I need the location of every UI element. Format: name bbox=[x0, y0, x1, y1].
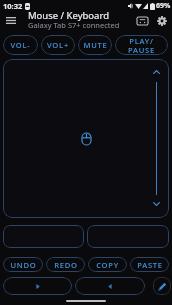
button[interactable]: Touchpad bbox=[3, 59, 169, 218]
button[interactable]: COPY bbox=[88, 257, 127, 272]
button[interactable]: MUTE bbox=[78, 35, 112, 55]
button[interactable]: VOL+ bbox=[41, 35, 75, 55]
button[interactable]: Keyboard bbox=[132, 9, 152, 32]
staticText: Mouse / Keyboard bbox=[28, 9, 110, 22]
staticText: Galaxy Tab S7+ connected bbox=[28, 20, 120, 30]
staticText: REDO bbox=[54, 260, 78, 270]
button[interactable]: Left mouse button bbox=[3, 277, 72, 295]
button[interactable]: REDO bbox=[46, 257, 85, 272]
button[interactable]: Open navigation menu bbox=[0, 9, 28, 32]
staticText: VOL- bbox=[10, 40, 31, 50]
staticText: VOL+ bbox=[47, 40, 69, 50]
button[interactable]: PASTE bbox=[130, 257, 169, 272]
button[interactable]: Left click bbox=[3, 225, 84, 248]
button[interactable]: VOL- bbox=[3, 35, 38, 55]
staticText: 69% bbox=[156, 1, 171, 11]
button[interactable]: PLAY/ PAUSE bbox=[115, 35, 168, 55]
staticText: COPY bbox=[96, 260, 119, 270]
button[interactable]: Right mouse button bbox=[75, 277, 145, 295]
staticText: PASTE bbox=[137, 260, 163, 270]
button[interactable]: Scroll bbox=[144, 59, 169, 218]
button[interactable]: Right click bbox=[87, 225, 169, 248]
staticText: UNDO bbox=[10, 260, 37, 270]
button[interactable]: Edit text bbox=[153, 277, 171, 295]
button[interactable]: Settings bbox=[152, 9, 172, 32]
staticText: 10:32 bbox=[3, 1, 23, 11]
button[interactable]: UNDO bbox=[3, 257, 43, 272]
staticText: PLAY/ PAUSE bbox=[128, 36, 155, 55]
staticText: MUTE bbox=[83, 40, 108, 50]
